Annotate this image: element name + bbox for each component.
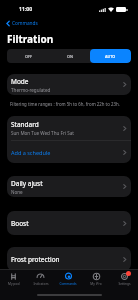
button[interactable]: Boost [7, 211, 131, 235]
staticText: Add a schedule [11, 149, 123, 156]
button[interactable]: Add a schedule [7, 141, 131, 163]
button[interactable]: My iPro [82, 270, 110, 287]
button[interactable]: My pool [0, 270, 27, 287]
staticText: My pool [8, 282, 20, 286]
staticText: OFF [25, 54, 32, 59]
staticText: Thermo-regulated [11, 87, 51, 93]
button[interactable]: Commands [4, 18, 40, 29]
staticText: Standard [11, 120, 39, 129]
button[interactable]: Indicators [27, 270, 54, 287]
button[interactable]: AUTO [90, 49, 131, 63]
staticText: None [11, 189, 23, 195]
button[interactable]: Standard [7, 116, 131, 140]
staticText: Sun Mon Tue Wed Thu Fri Sat [11, 130, 74, 136]
staticText: AUTO [105, 54, 116, 59]
staticText: Commands [12, 20, 38, 27]
staticText: ON [67, 54, 73, 59]
staticText: Settings [118, 282, 131, 286]
staticText: 11:00 [19, 5, 33, 12]
staticText: Daily ajust [11, 179, 43, 188]
button[interactable]: Frost protection [7, 247, 131, 271]
button[interactable]: ON [49, 49, 90, 63]
staticText: Filtering time ranges : from 5h to 6h, f… [10, 101, 120, 107]
button[interactable]: Daily ajust [7, 176, 131, 197]
button[interactable]: Settings [110, 270, 138, 287]
staticText: Boost [11, 219, 29, 228]
staticText: Filtration [7, 32, 54, 46]
button[interactable]: Mode [7, 74, 131, 95]
button[interactable]: Commands [54, 270, 82, 287]
button[interactable]: OFF [7, 49, 49, 63]
staticText: Frost protection [11, 255, 60, 264]
staticText: My iPro [90, 282, 102, 286]
staticText: Mode [11, 77, 29, 86]
staticText: Commands [59, 282, 77, 286]
staticText: Indicators [33, 282, 49, 286]
